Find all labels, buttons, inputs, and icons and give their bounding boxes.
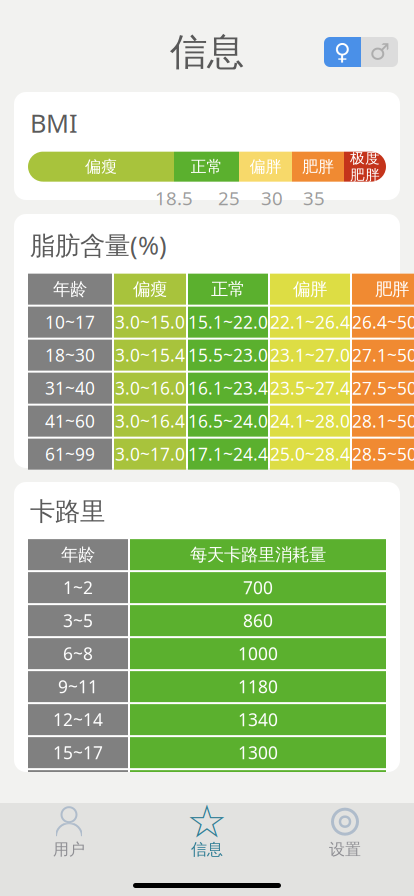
staticText: 25	[218, 186, 240, 210]
button[interactable]: Male	[361, 37, 398, 67]
staticText: 年龄	[61, 544, 95, 565]
staticText: 700	[243, 576, 273, 599]
staticText: 27.5~50.0	[352, 377, 414, 400]
staticText: 26.4~50.5	[352, 311, 414, 334]
staticText: 18~30	[45, 344, 95, 367]
staticText: 15~17	[53, 741, 103, 764]
staticText: 28.5~50.0	[352, 443, 414, 466]
staticText: 15.5~23.0	[188, 344, 268, 367]
staticText: 肥胖	[375, 278, 409, 300]
staticText: 6~8	[63, 642, 93, 665]
staticText: 偏胖	[293, 278, 327, 300]
staticText: 16.5~24.0	[188, 410, 268, 433]
staticText: 24.1~28.0	[270, 410, 350, 433]
staticText: 30	[261, 186, 283, 210]
button[interactable]: 用户	[0, 807, 138, 859]
staticText: 正常	[190, 157, 222, 176]
staticText: 每天卡路里消耗量	[190, 544, 326, 565]
staticText: 15.1~22.0	[188, 311, 268, 334]
staticText: 偏瘦	[133, 278, 167, 300]
staticText: 1~2	[63, 576, 93, 599]
staticText: 35	[303, 186, 325, 210]
staticText: 极度	[350, 149, 380, 167]
staticText: 信息	[191, 840, 223, 859]
staticText: 1180	[238, 675, 278, 698]
staticText: 17.1~24.4	[188, 443, 268, 466]
staticText: 1300	[238, 741, 278, 764]
staticText: 3.0~16.0	[115, 377, 185, 400]
staticText: 卡路里	[30, 496, 105, 527]
staticText: 肥胖	[302, 157, 334, 176]
staticText: 3.0~16.4	[115, 410, 185, 433]
staticText: 23.1~27.0	[270, 344, 350, 367]
staticText: 1340	[238, 708, 278, 731]
staticText: 41~60	[45, 410, 95, 433]
staticText: BMI	[30, 106, 78, 140]
staticText: 28.1~50.0	[352, 410, 414, 433]
staticText: 用户	[53, 840, 85, 859]
staticText: ☆	[186, 796, 227, 847]
staticText: 设置	[329, 840, 361, 859]
staticText: 3.0~17.0	[115, 443, 185, 466]
staticText: 23.5~27.4	[270, 377, 350, 400]
staticText: 信息	[170, 29, 244, 75]
staticText: 18.5	[155, 186, 193, 210]
staticText: 25.0~28.4	[270, 443, 350, 466]
staticText: 10~17	[45, 311, 95, 334]
staticText: 3~5	[63, 609, 93, 632]
staticText: 31~40	[45, 377, 95, 400]
button[interactable]: ☆	[138, 807, 276, 859]
staticText: ♂	[369, 39, 389, 65]
staticText: 12~14	[53, 708, 103, 731]
staticText: 年龄	[53, 278, 87, 300]
button[interactable]: Female	[324, 37, 361, 67]
staticText: 860	[243, 609, 273, 632]
staticText: 3.0~15.0	[115, 311, 185, 334]
staticText: 正常	[211, 278, 245, 300]
staticText: ♀	[334, 39, 351, 65]
staticText: 偏瘦	[85, 157, 117, 176]
button[interactable]: 设置	[276, 807, 414, 859]
staticText: 肥胖	[350, 166, 380, 184]
staticText: 27.1~50.0	[352, 344, 414, 367]
staticText: 61~99	[45, 443, 95, 466]
staticText: 3.0~15.4	[115, 344, 185, 367]
staticText: 1000	[238, 642, 278, 665]
staticText: 16.1~23.4	[188, 377, 268, 400]
staticText: 9~11	[58, 675, 98, 698]
staticText: 脂肪含量(%)	[30, 228, 167, 262]
staticText: 22.1~26.4	[270, 311, 350, 334]
staticText: 偏胖	[249, 157, 281, 176]
